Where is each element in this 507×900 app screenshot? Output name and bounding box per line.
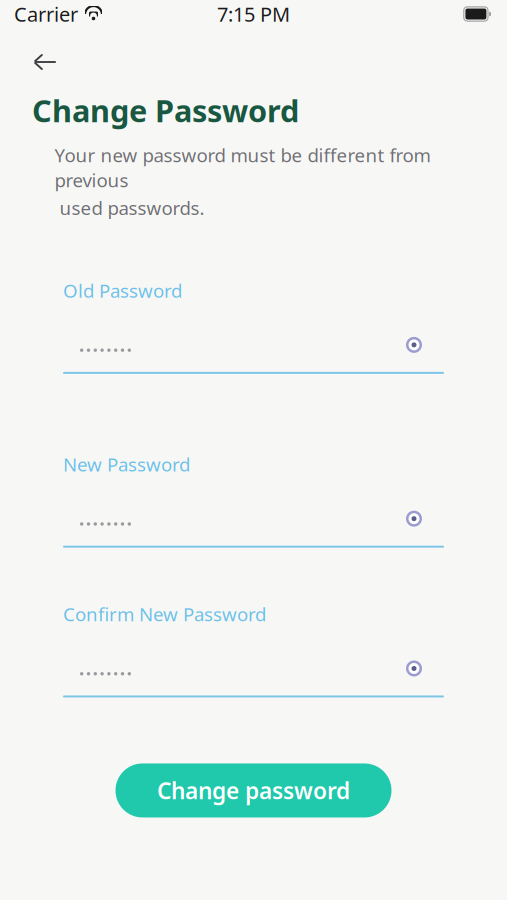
staticText: Change Password bbox=[32, 90, 299, 131]
button[interactable]: Show password bbox=[396, 653, 432, 683]
staticText: 7:15 PM bbox=[217, 1, 290, 27]
staticText: Confirm New Password bbox=[63, 602, 266, 626]
staticText: used passwords. bbox=[54, 195, 204, 220]
staticText: Old Password bbox=[63, 278, 182, 303]
button[interactable]: Show password bbox=[396, 504, 432, 534]
button[interactable]: Back bbox=[22, 40, 66, 84]
staticText: Carrier bbox=[14, 1, 78, 27]
button[interactable]: Show password bbox=[396, 330, 432, 360]
button[interactable]: Change password bbox=[115, 763, 391, 817]
staticText: New Password bbox=[63, 452, 190, 477]
staticText: Your new password must be different from… bbox=[54, 143, 430, 192]
staticText: Change password bbox=[157, 775, 350, 805]
